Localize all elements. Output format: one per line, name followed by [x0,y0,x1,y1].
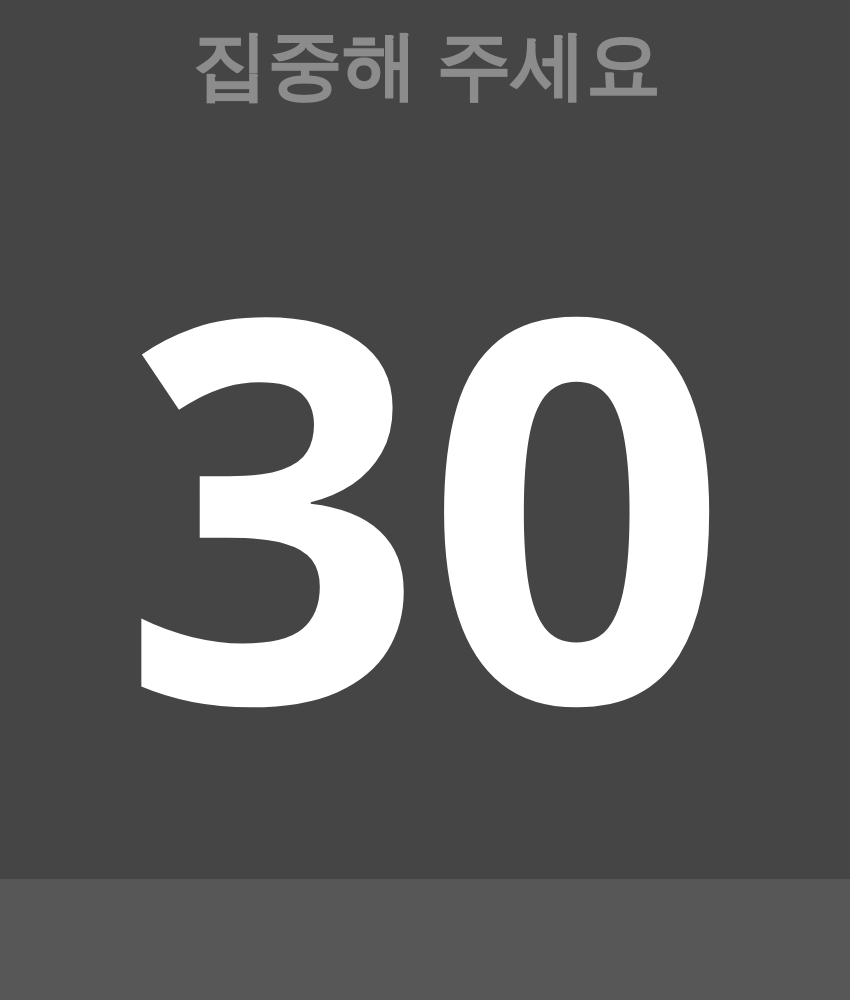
button[interactable]: 남은 시간 30분 [0,93,850,878]
staticText: 집중해 주세요 [191,12,660,105]
button[interactable]: 집중해 주세요 [0,0,850,93]
staticText: 30 [121,134,729,858]
